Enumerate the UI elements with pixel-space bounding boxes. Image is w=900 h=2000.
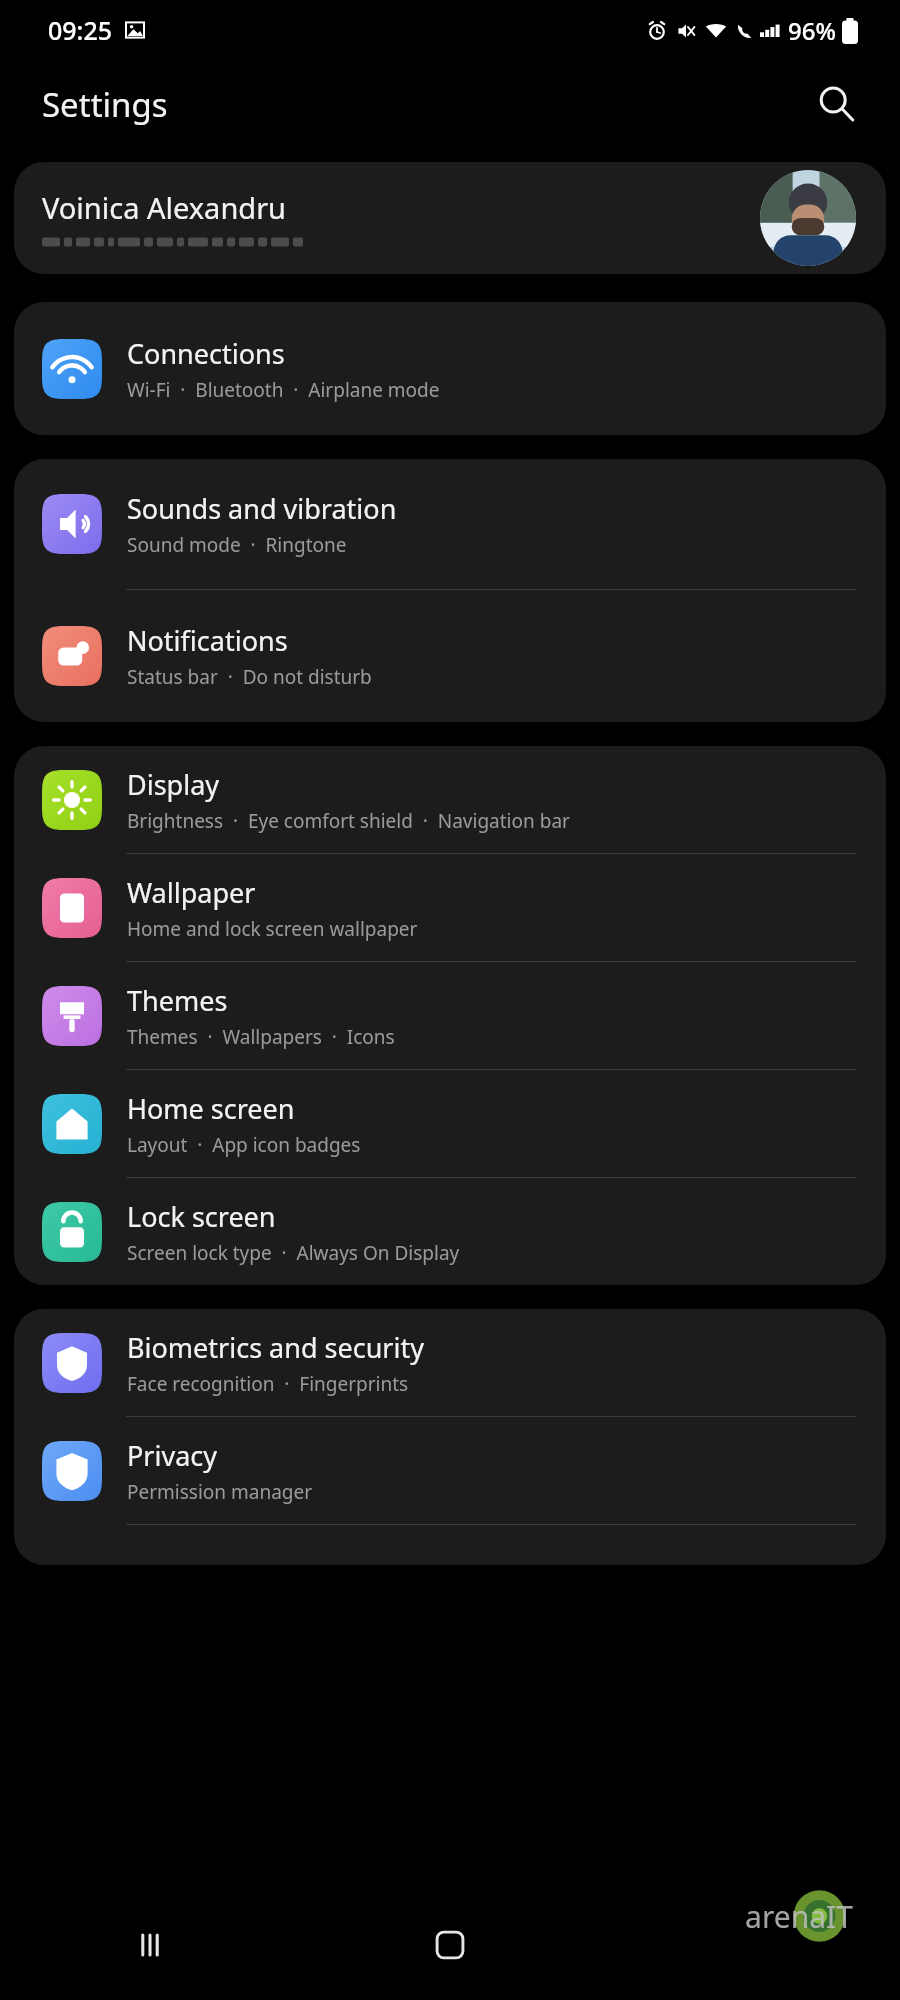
staticText: Home and lock screen wallpaper [127, 916, 418, 942]
staticText: Connections [127, 335, 285, 372]
staticText: Status bar · Do not disturb [127, 664, 372, 690]
button[interactable]: Lock screen [14, 1178, 886, 1285]
staticText: Permission manager [127, 1479, 313, 1505]
button[interactable]: Back [600, 1890, 900, 2000]
staticText: Sounds and vibration [127, 490, 397, 527]
button[interactable]: Privacy [14, 1417, 886, 1524]
button[interactable]: Biometrics and security [14, 1309, 886, 1416]
staticText: Biometrics and security [127, 1329, 424, 1366]
staticText: Themes · Wallpapers · Icons [127, 1024, 395, 1050]
staticText: Voinica Alexandru [42, 188, 287, 227]
button[interactable]: Home screen [14, 1070, 886, 1177]
button[interactable]: Wallpaper [14, 854, 886, 961]
button[interactable]: Home [300, 1890, 600, 2000]
staticText: Privacy [127, 1437, 218, 1474]
button[interactable]: Connections [14, 302, 886, 435]
button[interactable]: Themes [14, 962, 886, 1069]
staticText: Wallpaper [127, 874, 256, 911]
staticText: Home screen [127, 1090, 295, 1127]
staticText: Wi-Fi · Bluetooth · Airplane mode [127, 377, 440, 403]
staticText: 96% [788, 14, 836, 47]
staticText: Face recognition · Fingerprints [127, 1371, 409, 1397]
button[interactable]: Voinica Alexandru [14, 162, 886, 274]
staticText: Display [127, 766, 220, 803]
staticText: Settings [42, 82, 168, 127]
staticText: Lock screen [127, 1198, 276, 1235]
staticText: Screen lock type · Always On Display [127, 1240, 460, 1266]
staticText: 09:25 [48, 13, 113, 47]
button[interactable]: Sounds and vibration [14, 459, 886, 589]
staticText: Brightness · Eye comfort shield · Naviga… [127, 808, 570, 834]
button[interactable]: Recents [0, 1890, 300, 2000]
staticText: Notifications [127, 622, 288, 659]
button[interactable]: Display [14, 746, 886, 853]
staticText: Themes [127, 982, 228, 1019]
button[interactable]: Notifications [14, 590, 886, 722]
staticText: Sound mode · Ringtone [127, 532, 347, 558]
staticText: Layout · App icon badges [127, 1132, 361, 1158]
staticText: arenaIT [745, 1896, 853, 1937]
button[interactable]: Search [810, 78, 862, 130]
